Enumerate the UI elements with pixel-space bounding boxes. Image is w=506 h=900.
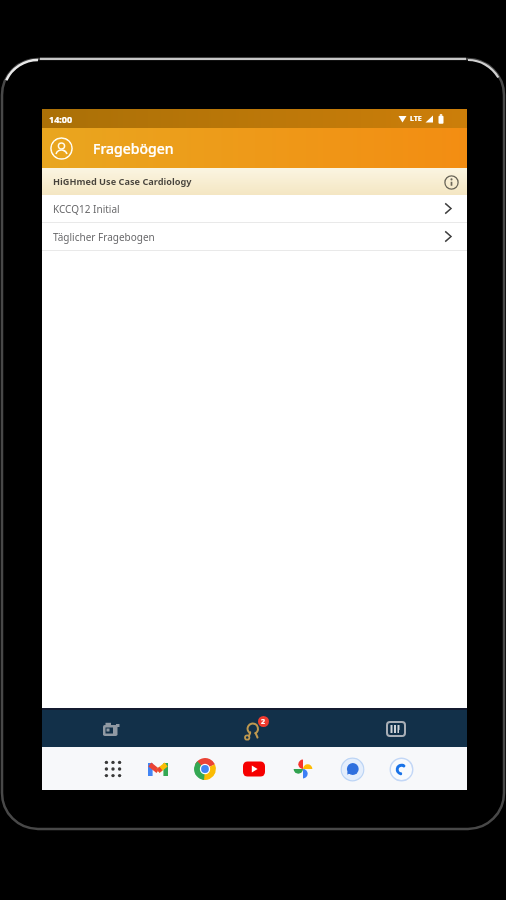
- button[interactable]: [50, 137, 73, 160]
- button[interactable]: Täglicher Fragebogen: [42, 223, 467, 250]
- staticText: Fragebögen: [93, 139, 174, 158]
- button[interactable]: [140, 751, 176, 787]
- button[interactable]: [383, 751, 419, 787]
- staticText: 2: [261, 717, 266, 727]
- button[interactable]: [378, 710, 414, 747]
- button[interactable]: 2: [236, 712, 276, 747]
- button[interactable]: [442, 173, 460, 191]
- staticText: Täglicher Fragebogen: [53, 230, 155, 244]
- button[interactable]: [95, 751, 131, 787]
- staticText: LTE: [410, 114, 422, 124]
- staticText: HiGHmed Use Case Cardiology: [53, 175, 192, 188]
- staticText: 14:00: [49, 113, 73, 125]
- button[interactable]: [187, 751, 223, 787]
- button[interactable]: [334, 751, 370, 787]
- button[interactable]: [93, 710, 129, 747]
- button[interactable]: [285, 751, 321, 787]
- button[interactable]: KCCQ12 Initial: [42, 195, 467, 222]
- staticText: KCCQ12 Initial: [53, 202, 120, 216]
- button[interactable]: [236, 751, 272, 787]
